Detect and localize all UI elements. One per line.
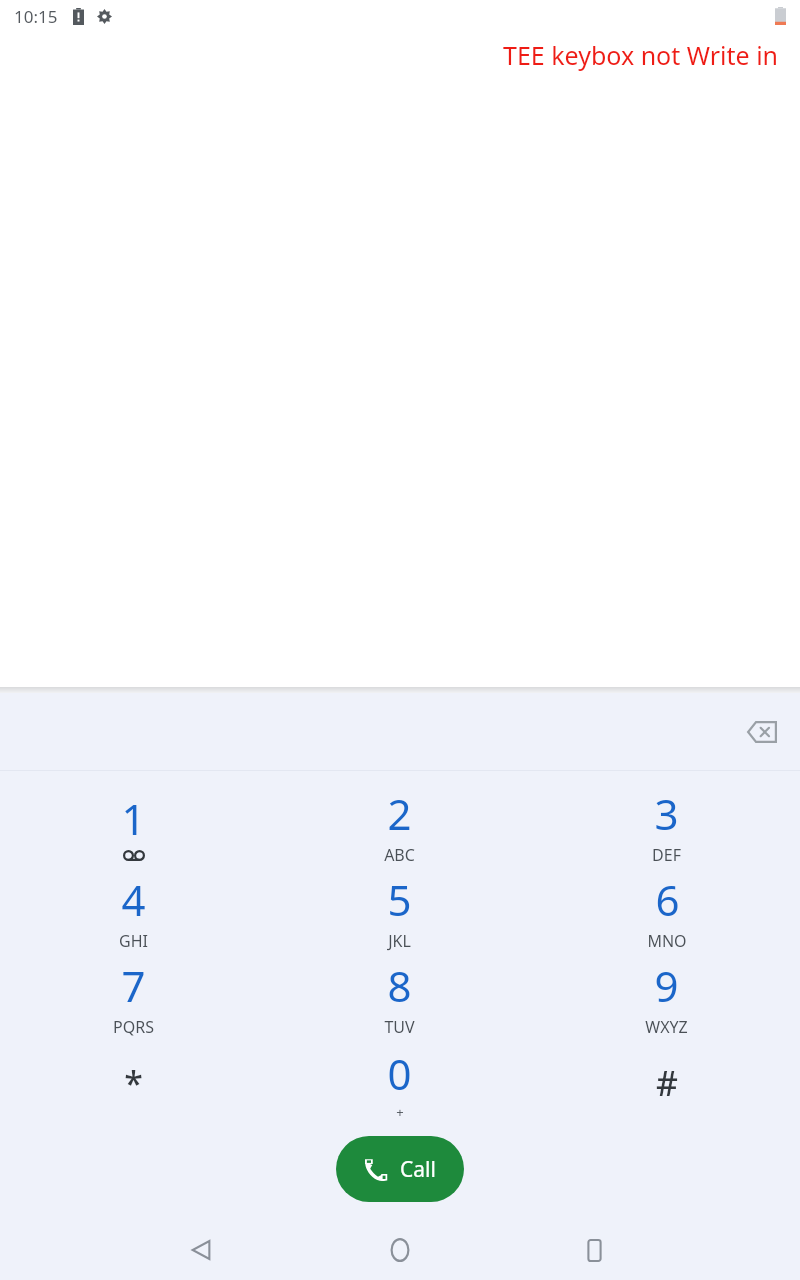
button[interactable]: Home <box>376 1226 424 1274</box>
button[interactable]: # <box>533 1040 800 1126</box>
button[interactable]: Recent apps <box>570 1226 618 1274</box>
button[interactable]: 9 <box>533 954 800 1040</box>
staticText: 9 <box>654 957 679 1014</box>
button[interactable]: 2 <box>266 782 533 868</box>
staticText: # <box>656 1060 678 1106</box>
staticText: TEE keybox not Write in <box>503 38 779 72</box>
staticText: * <box>124 1060 143 1106</box>
staticText: + <box>396 1103 404 1121</box>
staticText: ABC <box>384 844 415 866</box>
button[interactable]: 3 <box>533 782 800 868</box>
staticText: 10:15 <box>14 5 58 28</box>
button[interactable]: 8 <box>266 954 533 1040</box>
staticText: JKL <box>388 930 411 952</box>
button[interactable]: Backspace <box>738 708 786 756</box>
staticText: 0 <box>387 1045 412 1102</box>
button[interactable]: 6 <box>533 868 800 954</box>
staticText: 5 <box>387 871 412 928</box>
button[interactable]: 5 <box>266 868 533 954</box>
staticText: 6 <box>655 871 680 928</box>
staticText: PQRS <box>113 1016 154 1038</box>
button[interactable]: 1 <box>0 782 266 868</box>
staticText: TUV <box>384 1016 415 1038</box>
staticText: 8 <box>387 957 412 1014</box>
staticText: 2 <box>387 785 412 842</box>
staticText: 3 <box>654 785 679 842</box>
staticText: 7 <box>121 957 146 1014</box>
staticText: Call <box>400 1155 436 1184</box>
button[interactable]: 4 <box>0 868 266 954</box>
staticText: GHI <box>119 930 148 952</box>
button[interactable]: Back <box>177 1226 225 1274</box>
staticText: 1 <box>121 790 146 847</box>
button[interactable]: 7 <box>0 954 266 1040</box>
button[interactable]: 0 <box>266 1040 533 1126</box>
staticText: MNO <box>647 930 687 952</box>
button[interactable]: Call <box>336 1136 464 1202</box>
button[interactable]: * <box>0 1040 266 1126</box>
staticText: WXYZ <box>645 1016 688 1038</box>
staticText: DEF <box>652 844 681 866</box>
staticText: 4 <box>121 871 146 928</box>
